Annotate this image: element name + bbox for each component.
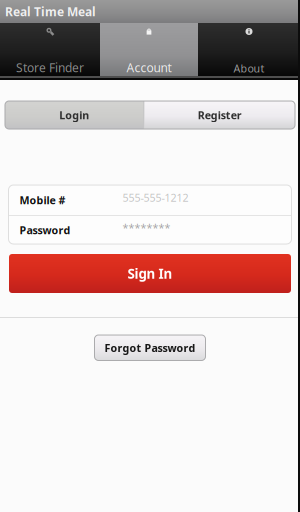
staticText: Password [19,223,70,237]
staticText: Real Time Meal [5,3,96,19]
button[interactable]: Store Finder [0,23,100,76]
staticText: ******** [122,220,170,235]
staticText: 555-555-1212 [122,190,188,205]
button[interactable]: Register [144,101,295,129]
staticText: Account [126,60,171,75]
button[interactable]: Account [100,23,198,76]
button[interactable]: Login [5,101,143,129]
button[interactable]: About [198,23,300,76]
staticText: Login [59,108,89,122]
staticText: Sign In [127,265,172,282]
staticText: Register [198,108,242,122]
button[interactable]: Sign In [9,254,291,293]
staticText: Forgot Password [104,341,195,355]
button[interactable]: Forgot Password [94,335,205,360]
staticText: About [233,61,264,75]
staticText: Store Finder [16,60,84,75]
staticText: Mobile # [19,193,65,207]
